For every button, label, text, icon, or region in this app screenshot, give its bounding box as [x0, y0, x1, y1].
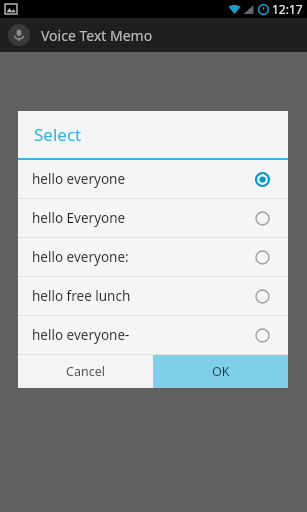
- button[interactable]: hello Everyone: [18, 199, 288, 237]
- button[interactable]: hello free lunch: [18, 277, 288, 315]
- button[interactable]: hello everyone:: [18, 238, 288, 276]
- button[interactable]: OK: [153, 355, 288, 388]
- staticText: hello Everyone: [32, 209, 255, 227]
- button[interactable]: hello everyone-: [18, 316, 288, 354]
- staticText: OK: [212, 363, 230, 380]
- button[interactable]: App icon: [8, 24, 30, 46]
- button[interactable]: hello everyone: [18, 160, 288, 198]
- staticText: Cancel: [66, 363, 105, 380]
- staticText: Select: [34, 123, 82, 146]
- staticText: Voice Text Memo: [41, 26, 153, 45]
- staticText: hello everyone-: [32, 326, 255, 344]
- staticText: 12:17: [272, 1, 303, 17]
- button[interactable]: Cancel: [18, 355, 153, 388]
- staticText: hello everyone:: [32, 248, 255, 266]
- staticText: hello everyone: [32, 170, 255, 188]
- staticText: hello free lunch: [32, 287, 255, 305]
